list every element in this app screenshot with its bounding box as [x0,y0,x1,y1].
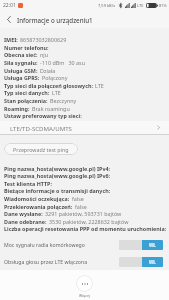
button[interactable]: LTE/TD-SCDMA/UMTS [0,121,169,134]
staticText: Działa [40,67,56,74]
button[interactable]: WŁ [119,257,163,267]
staticText: 22:01 [3,2,16,9]
staticText: Bieżące informacje o transmisji danych: [4,187,111,194]
staticText: Numer telefonu: [4,44,49,51]
staticText: Dane wysłane: [4,210,43,217]
button[interactable]: Przeprowadź test ping [4,143,78,155]
staticText: Moc sygnału radia komórkowego [4,241,85,248]
staticText: false [75,203,87,210]
staticText: LTE/TD-SCDMA/UMTS [10,124,72,132]
staticText: Stan połączenia: [4,97,48,104]
staticText: Bezczynny [50,97,77,104]
staticText: Usługa GSM: [4,67,38,74]
staticText: 7,59 kB/s [98,3,116,8]
staticText: Więcej [79,293,90,298]
staticText: IMEI: [4,36,18,43]
staticText: Test klienta HTTP: [4,180,52,187]
staticText: Roaming: [4,105,30,112]
staticText: Typ sieci dla połączeń głosowych: [4,82,93,89]
staticText: WŁ [149,242,156,248]
staticText: 865873032800629 [20,36,67,43]
staticText: Dane odebrane: [4,218,47,225]
staticText: false [72,195,84,202]
staticText: Ping nazwa_hosta(www.google.pl) IPv6: [4,172,111,179]
staticText: Ping nazwa_hosta(www.google.pl) IPv4: [4,165,111,172]
staticText: Brak roamingu [32,105,70,112]
staticText: WŁ [149,259,156,265]
staticText: Przekierowania połączeń: [4,203,73,210]
staticText: 81% [159,3,167,8]
staticText: Wiadomości oczekująca: [4,195,70,202]
staticText: 3291 pakietów, 593731 bajtów [45,210,122,217]
staticText: Połączony [42,74,68,81]
button[interactable]: WŁ [119,240,163,250]
staticText: Informacje o urządzeniu1 [17,16,93,24]
staticText: LTE [137,3,144,8]
staticText: Obsługa głosu przez LTE włączona [4,258,88,265]
staticText: Ustaw preferowany typ sieci: [4,112,82,119]
staticText: Typ sieci danych: [4,89,50,96]
staticText: Liczba operacji resetowania PPP od momen… [4,225,167,232]
staticText: Siła sygnału: [4,59,38,66]
button[interactable]: Wstecz [0,11,17,28]
staticText: Usługa GPRS: [4,74,40,81]
staticText: LTE [52,89,61,96]
staticText: LTE [95,82,104,89]
staticText: Obecna sieć: [4,51,38,58]
staticText: Przeprowadź test ping [13,146,69,153]
staticText: 3530 pakietów, 2228632 bajtów [49,218,129,225]
staticText: nju [40,51,49,58]
button[interactable]: Więcej [76,275,93,292]
staticText: -110 dBm 30 asu [40,59,85,66]
